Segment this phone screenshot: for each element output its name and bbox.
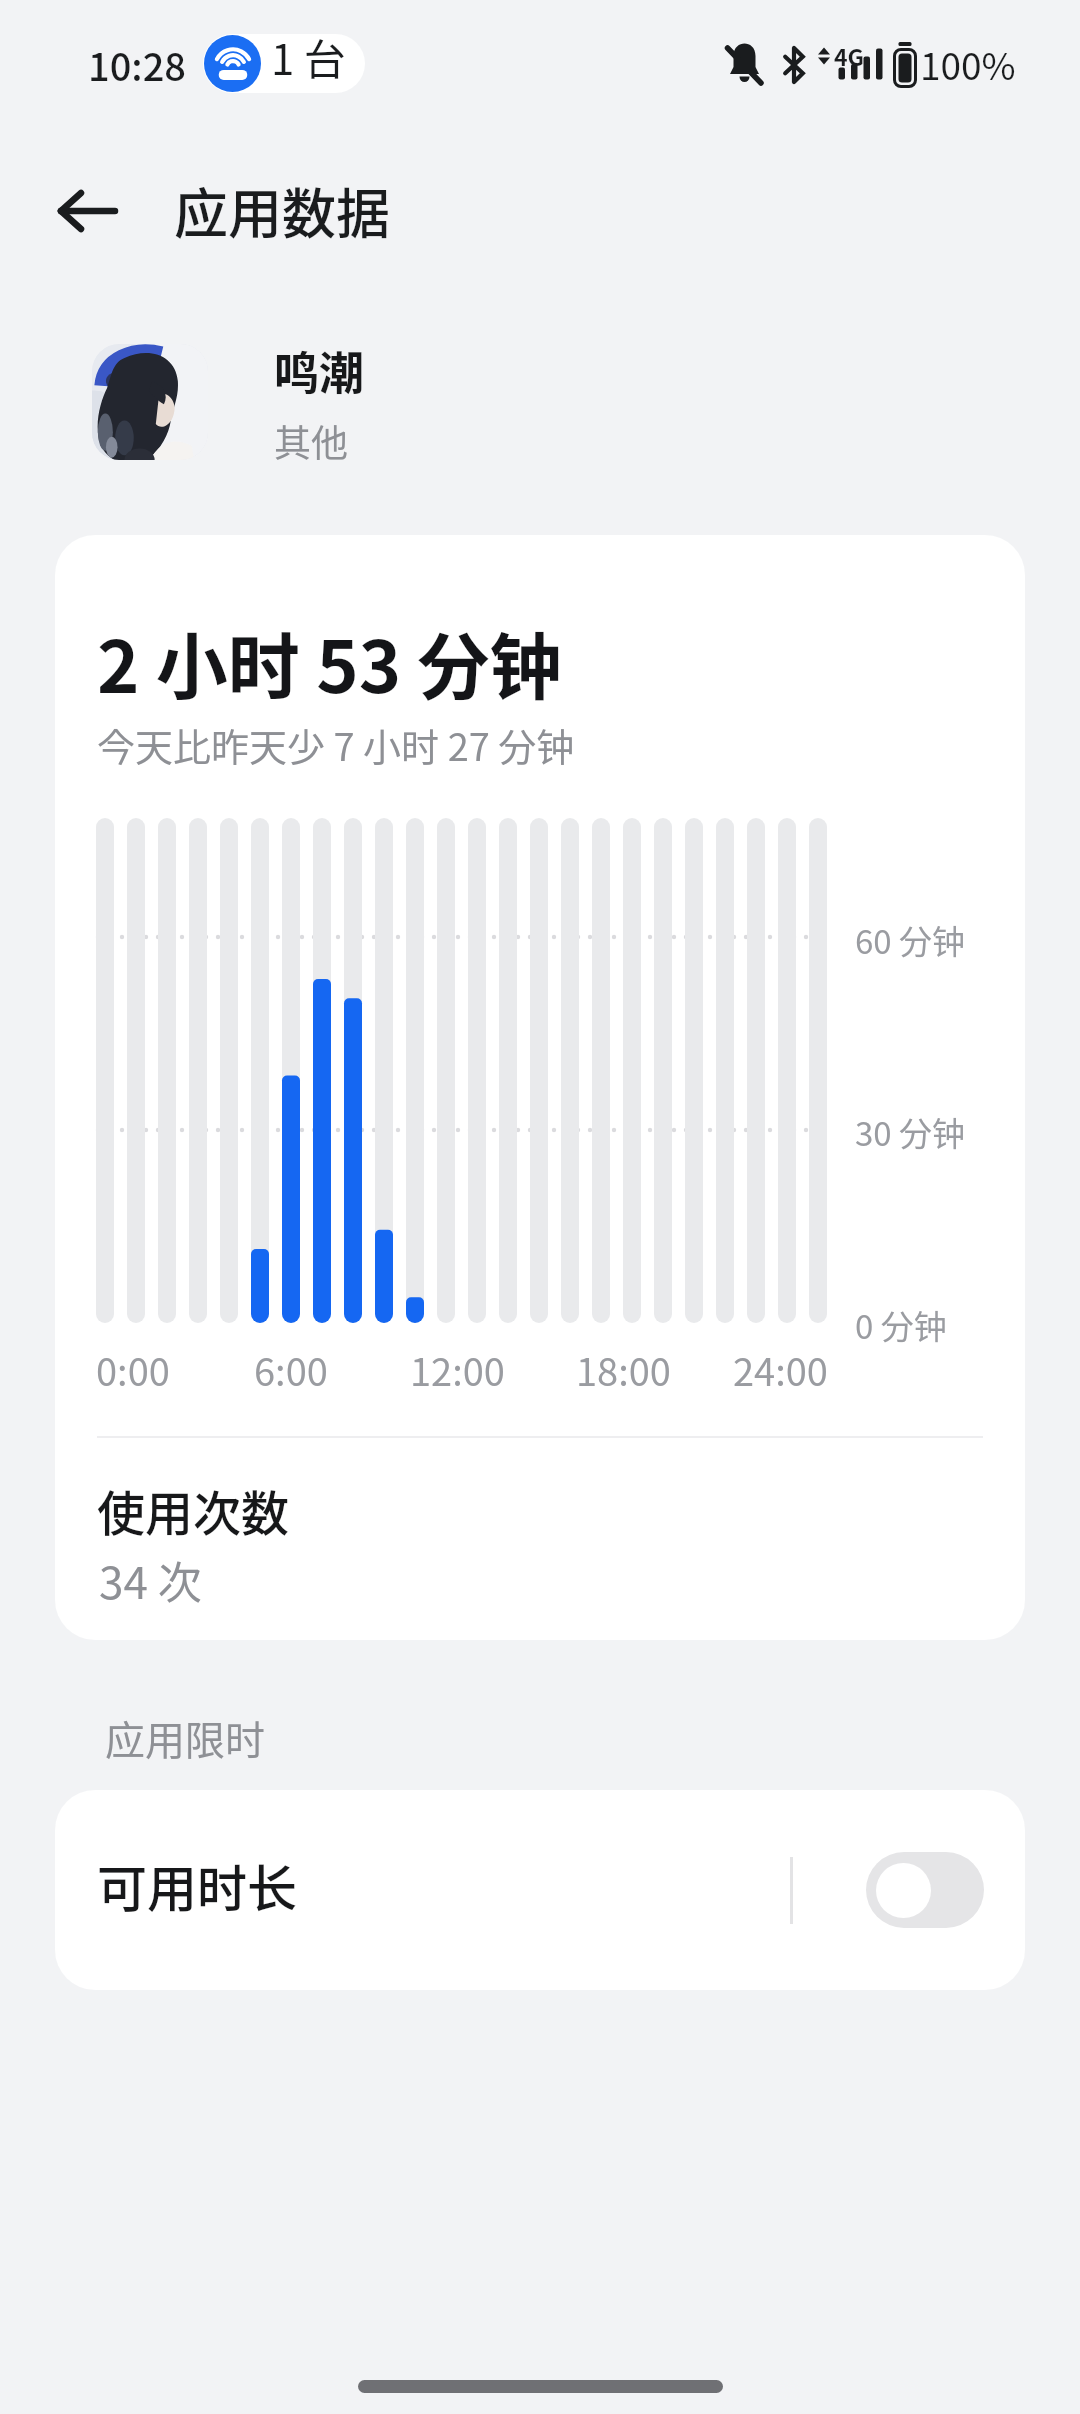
staticText: 使用次数	[97, 1475, 290, 1545]
staticText: 1 台	[271, 34, 346, 85]
staticText: 0:00	[96, 1342, 170, 1397]
staticText: 30 分钟	[855, 1108, 966, 1156]
button[interactable]: 可用时长	[55, 1790, 1025, 1990]
staticText: 0 分钟	[855, 1301, 947, 1349]
staticText: 2 小时 53 分钟	[97, 609, 562, 713]
staticText: 6:00	[254, 1342, 328, 1397]
button[interactable]	[40, 175, 135, 247]
staticText: 4G	[834, 39, 865, 72]
button[interactable]	[866, 1852, 984, 1928]
staticText: 可用时长	[97, 1849, 297, 1921]
staticText: 10:28	[88, 37, 186, 92]
staticText: 其他	[274, 414, 348, 468]
staticText: 12:00	[410, 1342, 505, 1397]
staticText: 应用数据	[174, 171, 390, 249]
staticText: 24:00	[733, 1342, 828, 1397]
staticText: 应用限时	[105, 1709, 265, 1767]
staticText: 34 次	[99, 1548, 202, 1612]
staticText: 今天比昨天少 7 小时 27 分钟	[97, 717, 575, 772]
staticText: 60 分钟	[855, 916, 966, 964]
staticText: 18:00	[576, 1342, 671, 1397]
staticText: 100%	[920, 37, 1016, 91]
staticText: 鸣潮	[274, 338, 365, 403]
